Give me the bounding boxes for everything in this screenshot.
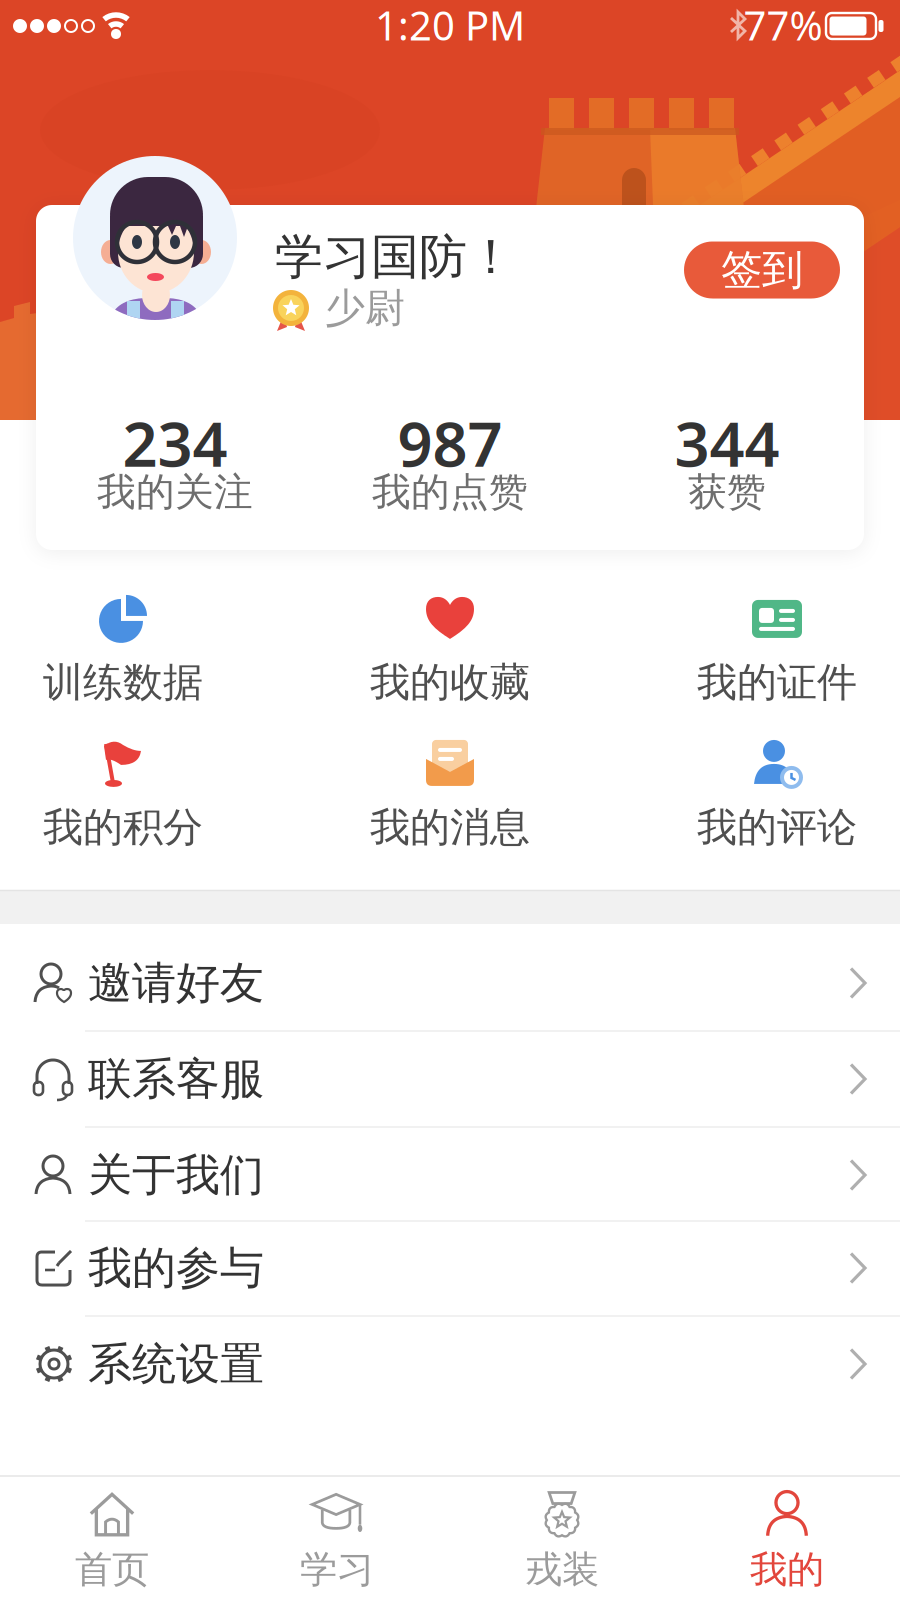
staticText: 我的证件 <box>697 658 857 707</box>
staticText: 我的 <box>750 1547 824 1592</box>
button[interactable]: 我的证件 <box>657 586 897 714</box>
staticText: 联系客服 <box>88 1052 264 1106</box>
button[interactable]: 我的 <box>674 1481 899 1599</box>
staticText: 77% <box>743 0 822 51</box>
staticText: 签到 <box>721 245 803 295</box>
staticText: 系统设置 <box>88 1337 264 1391</box>
staticText: 戎装 <box>525 1547 599 1592</box>
staticText: 训练数据 <box>43 658 203 707</box>
staticText: 首页 <box>75 1547 149 1592</box>
staticText: 987 <box>397 402 502 484</box>
button[interactable]: 邀请好友 <box>0 935 900 1030</box>
button[interactable]: 学习 <box>224 1481 449 1599</box>
button[interactable]: 我的收藏 <box>330 586 570 714</box>
staticText: 234 <box>122 402 227 484</box>
staticText: 学习 <box>300 1547 374 1592</box>
staticText: 我的积分 <box>43 803 203 852</box>
staticText: 获赞 <box>688 468 766 516</box>
button[interactable]: 我的参与 <box>0 1220 900 1315</box>
staticText: 我的参与 <box>88 1241 264 1295</box>
staticText: 我的收藏 <box>370 658 530 707</box>
staticText: 邀请好友 <box>88 956 264 1010</box>
staticText: 我的消息 <box>370 803 530 852</box>
staticText: 学习国防！ <box>275 227 515 286</box>
staticText: 我的关注 <box>97 468 253 516</box>
button[interactable]: 签到 <box>684 241 840 298</box>
button[interactable]: 关于我们 <box>0 1127 900 1222</box>
staticText: 我的点赞 <box>372 468 528 516</box>
button[interactable]: 我的积分 <box>3 731 243 859</box>
button[interactable]: 系统设置 <box>0 1316 900 1411</box>
staticText: 我的评论 <box>697 803 857 852</box>
button[interactable]: 戎装 <box>449 1481 674 1599</box>
button[interactable]: 联系客服 <box>0 1031 900 1126</box>
button[interactable]: 我的评论 <box>657 731 897 859</box>
staticText: 344 <box>674 402 779 484</box>
staticText: 1:20 PM <box>375 0 525 51</box>
staticText: 少尉 <box>325 283 405 332</box>
button[interactable]: 训练数据 <box>3 586 243 714</box>
button[interactable]: 我的消息 <box>330 731 570 859</box>
staticText: 关于我们 <box>88 1148 264 1202</box>
button[interactable]: 首页 <box>0 1481 224 1599</box>
